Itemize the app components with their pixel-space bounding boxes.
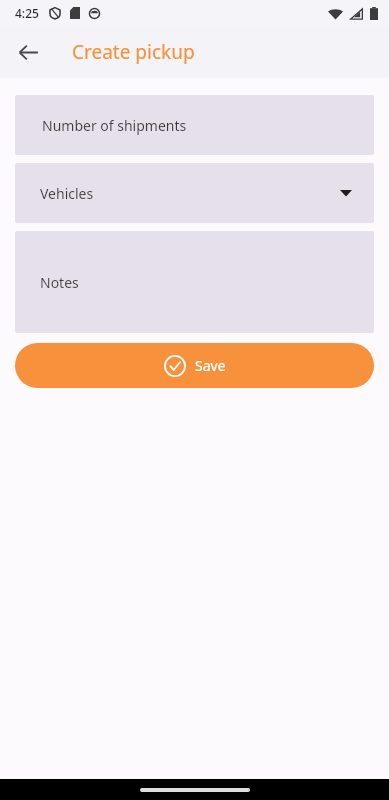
staticText: Save xyxy=(195,356,226,375)
button[interactable]: Notes xyxy=(15,231,374,333)
button[interactable]: Vehicles xyxy=(15,163,374,223)
staticText: Notes xyxy=(40,273,79,292)
button[interactable]: Save xyxy=(15,343,374,388)
button[interactable]: Back xyxy=(10,34,46,70)
staticText: Number of shipments xyxy=(42,116,187,135)
staticText: Vehicles xyxy=(40,184,94,203)
staticText: Create pickup xyxy=(72,39,195,65)
button[interactable]: Number of shipments xyxy=(15,95,374,155)
staticText: 4:25 xyxy=(15,5,39,21)
